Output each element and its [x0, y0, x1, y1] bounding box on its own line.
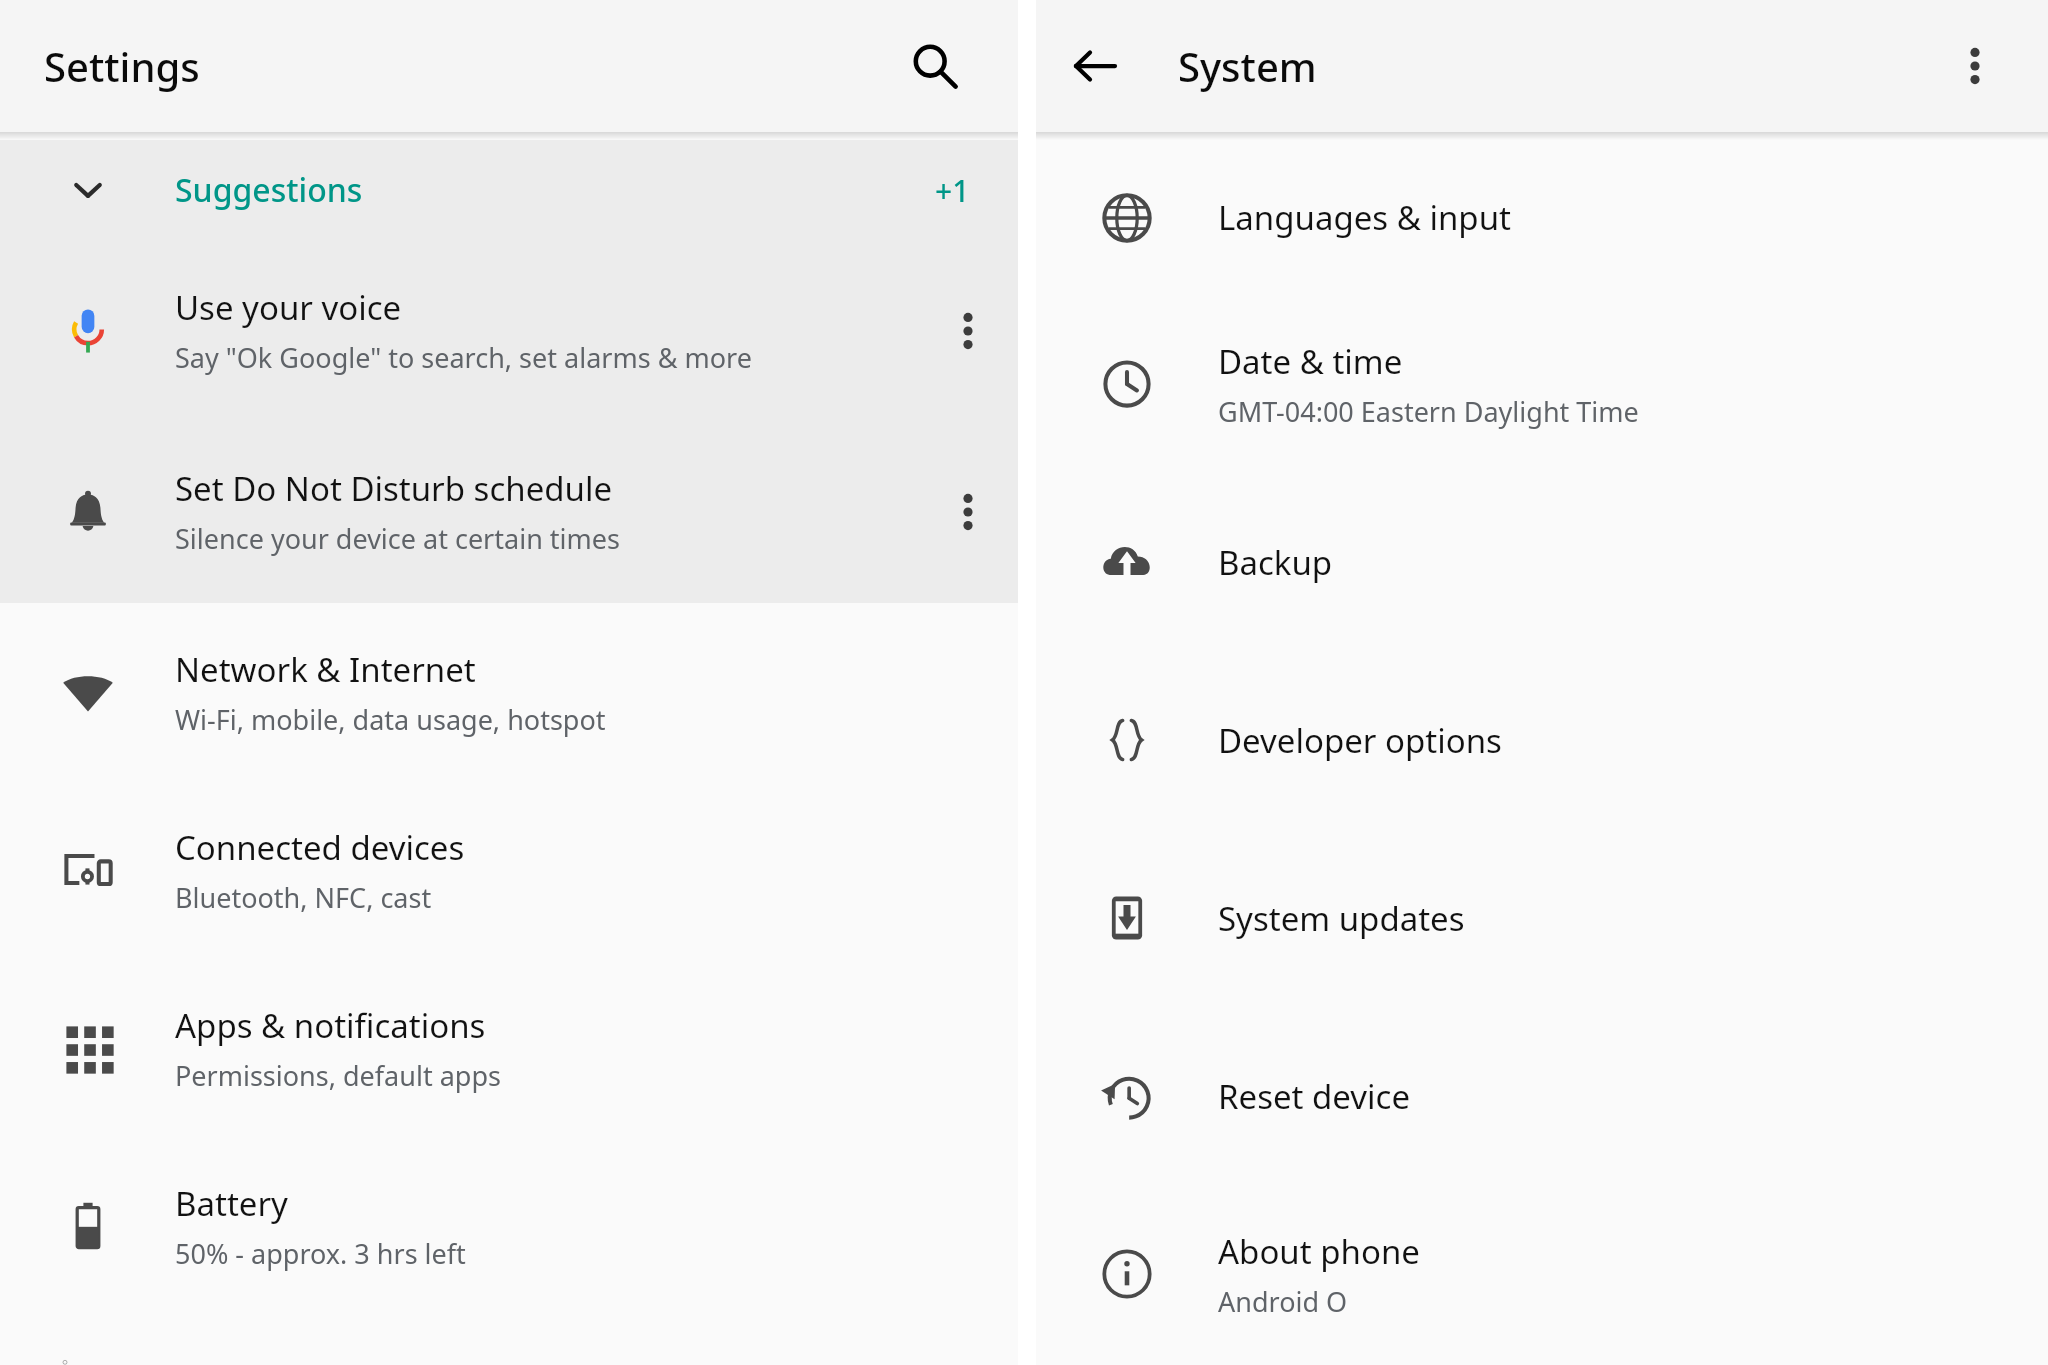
- button[interactable]: Apps & notifications: [0, 959, 1018, 1137]
- button[interactable]: More options: [918, 240, 1018, 421]
- staticText: Wi-Fi, mobile, data usage, hotspot: [175, 701, 606, 738]
- staticText: Network & Internet: [175, 647, 476, 692]
- button[interactable]: Developer options: [1036, 651, 2048, 829]
- staticText: GMT-04:00 Eastern Daylight Time: [1218, 393, 1639, 430]
- staticText: System: [1178, 39, 1317, 93]
- staticText: Permissions, default apps: [175, 1057, 501, 1094]
- staticText: Use your voice: [175, 285, 402, 330]
- staticText: Silence your device at certain times: [175, 520, 620, 557]
- button[interactable]: Suggestions: [0, 140, 1018, 240]
- staticText: Battery: [175, 1181, 288, 1226]
- button[interactable]: Network & Internet: [0, 603, 1018, 781]
- staticText: Android O: [1218, 1283, 1348, 1320]
- button[interactable]: About phone: [1036, 1185, 2048, 1363]
- staticText: Backup: [1218, 540, 1333, 585]
- staticText: Reset device: [1218, 1074, 1411, 1119]
- button[interactable]: Use your voice: [0, 240, 1018, 421]
- button[interactable]: Connected devices: [0, 781, 1018, 959]
- staticText: Connected devices: [175, 825, 465, 870]
- button[interactable]: Battery: [0, 1137, 1018, 1315]
- button[interactable]: Languages & input: [1036, 140, 2048, 295]
- button[interactable]: Date & time: [1036, 295, 2048, 473]
- staticText: 50% - approx. 3 hrs left: [175, 1235, 466, 1272]
- staticText: Languages & input: [1218, 195, 1511, 240]
- staticText: Set Do Not Disturb schedule: [175, 466, 613, 511]
- staticText: About phone: [1218, 1229, 1420, 1274]
- button[interactable]: Backup: [1036, 473, 2048, 651]
- staticText: Date & time: [1218, 339, 1403, 384]
- staticText: Apps & notifications: [175, 1003, 486, 1048]
- button[interactable]: System updates: [1036, 829, 2048, 1007]
- button[interactable]: Reset device: [1036, 1007, 2048, 1185]
- button[interactable]: More options: [1932, 23, 2018, 109]
- button[interactable]: Search: [892, 23, 978, 109]
- staticText: System updates: [1218, 896, 1465, 941]
- staticText: Settings: [44, 39, 200, 93]
- staticText: Bluetooth, NFC, cast: [175, 879, 432, 916]
- button[interactable]: Back: [1052, 23, 1138, 109]
- staticText: Suggestions: [175, 168, 363, 212]
- staticText: Developer options: [1218, 718, 1502, 763]
- staticText: +1: [935, 170, 970, 211]
- button[interactable]: More options: [918, 421, 1018, 602]
- button[interactable]: Set Do Not Disturb schedule: [0, 421, 1018, 602]
- staticText: Say "Ok Google" to search, set alarms & …: [175, 339, 752, 376]
